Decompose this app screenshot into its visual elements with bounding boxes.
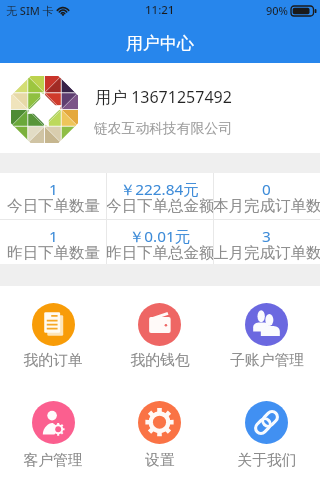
staticText: 11:21 <box>145 2 175 18</box>
button[interactable]: 0 <box>213 173 320 218</box>
button[interactable]: 客户管理 <box>0 401 106 470</box>
button[interactable]: 3 <box>213 220 320 265</box>
staticText: 今日下单数量 <box>7 196 100 216</box>
staticText: 我的钱包 <box>130 351 190 370</box>
staticText: 设置 <box>145 451 175 470</box>
staticText: 1 <box>49 226 58 247</box>
button[interactable]: ￥0.01元 <box>106 220 213 265</box>
staticText: 今日下单总金额 <box>106 196 213 216</box>
staticText: 子账户管理 <box>230 351 304 370</box>
staticText: 本月完成订单数 <box>213 196 320 216</box>
button[interactable]: 我的钱包 <box>106 303 213 370</box>
button[interactable]: ￥222.84元 <box>106 173 213 218</box>
staticText: 90% <box>266 3 288 18</box>
button[interactable]: 用户 13671257492 <box>0 63 320 153</box>
staticText: 0 <box>262 179 271 200</box>
staticText: 无 SIM 卡 <box>6 3 54 18</box>
staticText: 3 <box>262 226 271 247</box>
button[interactable]: 关于我们 <box>213 401 320 470</box>
staticText: 我的订单 <box>23 351 83 370</box>
staticText: 关于我们 <box>237 451 297 470</box>
staticText: 昨日下单数量 <box>7 243 100 263</box>
button[interactable]: 我的订单 <box>0 303 106 370</box>
staticText: 客户管理 <box>23 451 83 470</box>
button[interactable]: 1 <box>0 220 106 265</box>
staticText: 1 <box>49 179 58 200</box>
staticText: ￥222.84元 <box>120 179 199 200</box>
button[interactable]: 设置 <box>106 401 213 470</box>
staticText: 链农互动科技有限公司 <box>94 120 232 137</box>
staticText: 用户中心 <box>126 33 194 54</box>
staticText: 用户 13671257492 <box>95 86 232 108</box>
button[interactable]: 子账户管理 <box>213 303 320 370</box>
staticText: ￥0.01元 <box>129 226 190 247</box>
button[interactable]: 1 <box>0 173 106 218</box>
staticText: 昨日下单总金额 <box>106 243 213 263</box>
staticText: 上月完成订单数 <box>213 243 320 263</box>
